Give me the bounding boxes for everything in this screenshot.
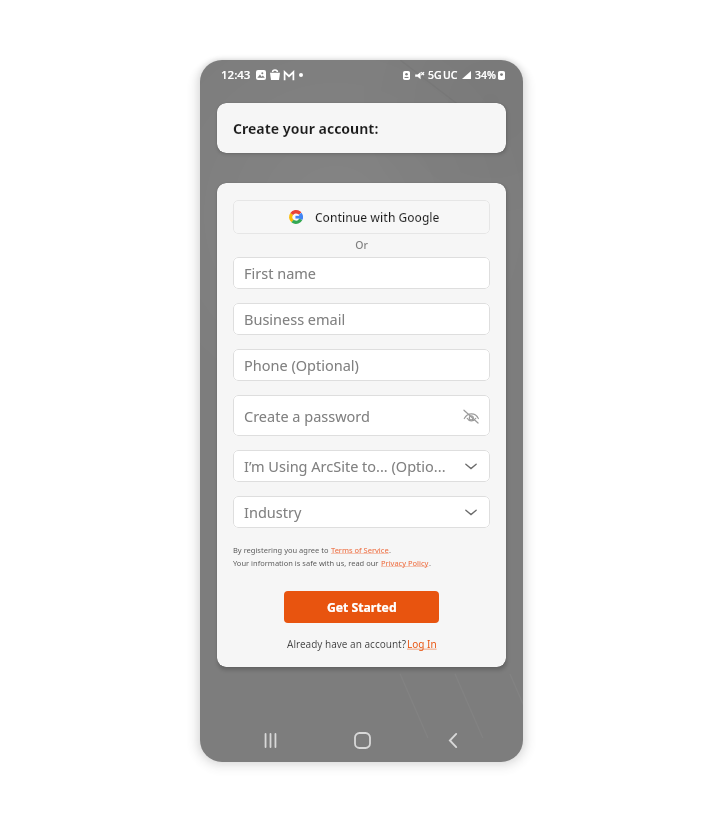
- button[interactable]: Privacy Policy: [381, 558, 429, 568]
- button[interactable]: Show password: [458, 403, 484, 429]
- button[interactable]: Create a password: [233, 395, 490, 436]
- staticText: I’m Using ArcSite to... (Optio...: [244, 456, 446, 476]
- staticText: Industry: [244, 502, 302, 522]
- staticText: Already have an account?: [287, 637, 407, 651]
- button[interactable]: First name: [233, 257, 490, 289]
- staticText: Business email: [244, 309, 346, 329]
- staticText: .: [429, 558, 432, 568]
- button[interactable]: I’m Using ArcSite to... (Optio...: [233, 450, 490, 482]
- button[interactable]: Get Started: [284, 591, 439, 623]
- staticText: By registering you agree to: [233, 545, 331, 555]
- staticText: First name: [244, 263, 317, 283]
- staticText: Create a password: [244, 406, 370, 426]
- button[interactable]: Terms of Service: [331, 545, 389, 555]
- staticText: 12:43: [221, 67, 251, 83]
- button[interactable]: Create your account:: [217, 103, 506, 153]
- button[interactable]: Open dropdown: [458, 499, 484, 525]
- staticText: UC: [443, 68, 458, 82]
- staticText: Continue with Google: [315, 209, 440, 225]
- staticText: 5G: [428, 68, 442, 82]
- button[interactable]: Log In: [407, 637, 437, 651]
- button[interactable]: Continue with Google: [233, 200, 490, 234]
- staticText: Your information is safe with us, read o…: [233, 558, 381, 568]
- staticText: 34%: [475, 68, 496, 82]
- staticText: Get Started: [327, 599, 397, 616]
- button[interactable]: Open dropdown: [458, 453, 484, 479]
- staticText: Or: [233, 238, 490, 252]
- button[interactable]: Back: [431, 718, 475, 762]
- button[interactable]: Industry: [233, 496, 490, 528]
- button[interactable]: Home: [340, 718, 384, 762]
- button[interactable]: Phone (Optional): [233, 349, 490, 381]
- staticText: Phone (Optional): [244, 355, 359, 375]
- button[interactable]: Recents: [248, 718, 292, 762]
- staticText: .: [389, 545, 392, 555]
- staticText: Create your account:: [233, 119, 379, 138]
- button[interactable]: Business email: [233, 303, 490, 335]
